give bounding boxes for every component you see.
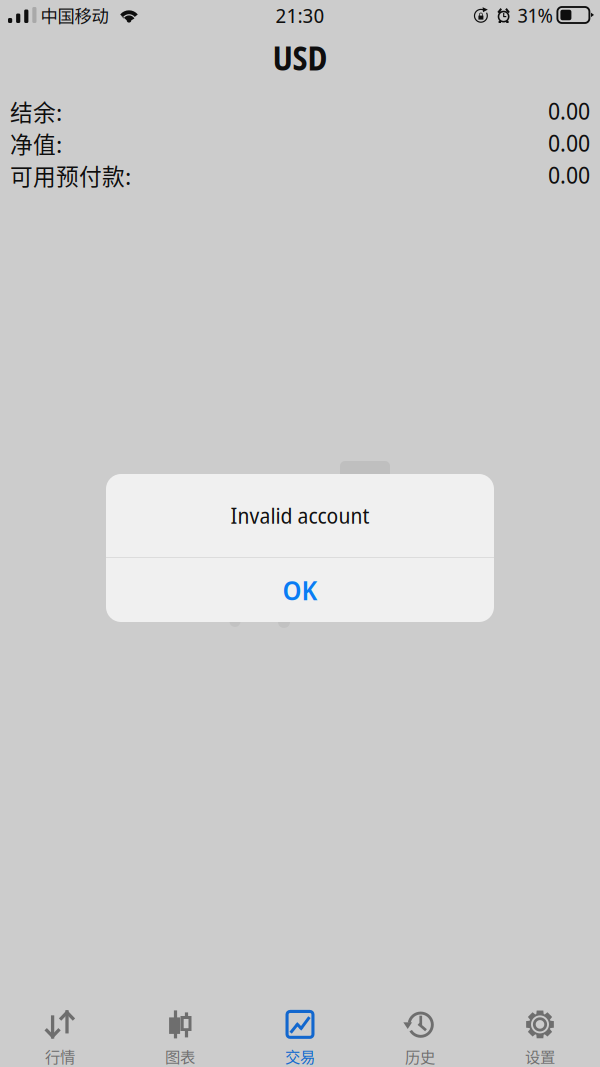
button[interactable]: 行情 (0, 989, 120, 1067)
staticText: 行情 (45, 1045, 75, 1067)
button[interactable]: 图表 (120, 989, 240, 1067)
button[interactable]: 交易 (240, 989, 360, 1067)
staticText: 净值: (10, 127, 62, 159)
staticText: 0.00 (548, 96, 590, 126)
button[interactable]: 历史 (360, 989, 480, 1067)
staticText: 0.00 (548, 128, 590, 158)
staticText: 设置 (525, 1045, 555, 1067)
staticText: 0.00 (548, 160, 590, 190)
staticText: USD (272, 35, 327, 80)
staticText: 图表 (165, 1045, 195, 1067)
staticText: 历史 (405, 1045, 435, 1067)
staticText: 中国移动 (40, 2, 108, 28)
staticText: Invalid account (230, 501, 369, 530)
button[interactable]: OK (106, 558, 494, 622)
staticText: 21:30 (275, 1, 324, 29)
staticText: OK (282, 572, 317, 608)
button[interactable]: 设置 (480, 989, 600, 1067)
staticText: 结余: (10, 95, 62, 127)
staticText: 交易 (285, 1045, 315, 1067)
staticText: 31% (517, 1, 552, 29)
staticText: 可用预付款: (10, 159, 131, 191)
